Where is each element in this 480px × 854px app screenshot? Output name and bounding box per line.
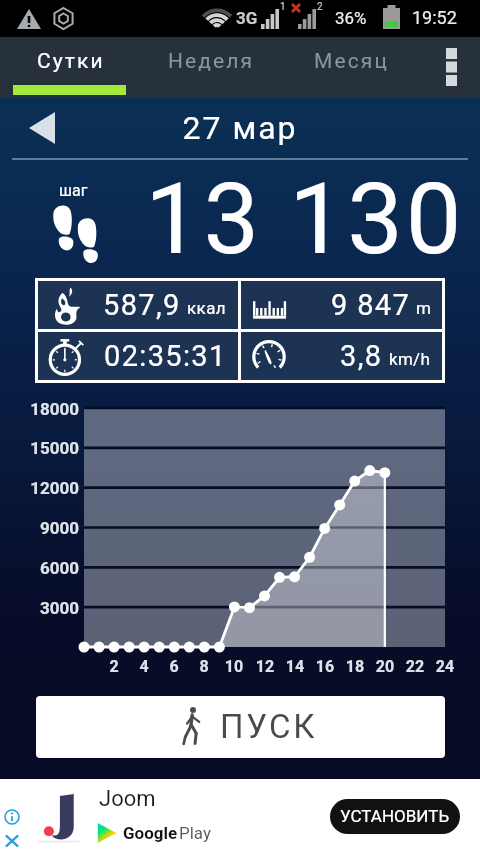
staticText: 3,8 [340, 339, 383, 373]
staticText: 13 130 [130, 161, 464, 277]
button[interactable]: Месяц [280, 37, 420, 98]
button[interactable]: ПУСК [36, 696, 445, 758]
staticText: 16 [310, 657, 340, 676]
staticText: Play [179, 823, 212, 843]
staticText: 2 [99, 657, 129, 676]
staticText: 18000 [0, 399, 79, 419]
button[interactable]: Неделя [140, 37, 280, 98]
staticText: km/h [389, 349, 431, 369]
staticText: 18 [340, 657, 370, 676]
staticText: 6 [159, 657, 189, 676]
button[interactable]: Close ad [5, 834, 19, 848]
staticText: Месяц [314, 49, 389, 74]
button[interactable]: Previous day [18, 105, 66, 153]
staticText: 3000 [0, 598, 79, 618]
staticText: 22 [400, 657, 430, 676]
staticText: 10 [219, 657, 249, 676]
staticText: 2 [317, 1, 323, 13]
button[interactable]: УСТАНОВИТЬ [330, 799, 460, 834]
button[interactable]: Сутки [0, 37, 140, 98]
staticText: m [416, 298, 431, 318]
staticText: 12000 [0, 478, 79, 498]
staticText: УСТАНОВИТЬ [340, 806, 450, 826]
staticText: 36% [335, 8, 367, 28]
staticText: 9000 [0, 518, 79, 538]
staticText: 27 мар [0, 109, 480, 147]
button[interactable]: 02:35:31 [38, 332, 238, 380]
staticText: ПУСК [220, 707, 318, 746]
staticText: 15000 [0, 438, 79, 458]
staticText: 20 [370, 657, 400, 676]
button[interactable]: 3,8 [241, 332, 442, 380]
staticText: Google [123, 823, 178, 843]
staticText: 14 [280, 657, 310, 676]
staticText: 4 [129, 657, 159, 676]
staticText: Сутки [37, 49, 105, 74]
staticText: 19:52 [412, 7, 457, 28]
staticText: 12 [250, 657, 280, 676]
button[interactable]: More options [438, 37, 480, 98]
staticText: 24 [430, 657, 460, 676]
staticText: 587,9 [103, 288, 181, 322]
staticText: Joom [99, 786, 156, 812]
staticText: 02:35:31 [104, 339, 227, 373]
staticText: 8 [189, 657, 219, 676]
staticText: шаг [59, 181, 88, 200]
staticText: 6000 [0, 558, 79, 578]
staticText: 9 847 [331, 288, 411, 322]
staticText: ккал [187, 298, 227, 318]
button[interactable]: 587,9 [38, 281, 238, 329]
button[interactable]: 9 847 [241, 281, 442, 329]
staticText: Неделя [168, 49, 255, 74]
staticText: 3G [236, 8, 258, 28]
staticText: 1 [280, 1, 286, 13]
